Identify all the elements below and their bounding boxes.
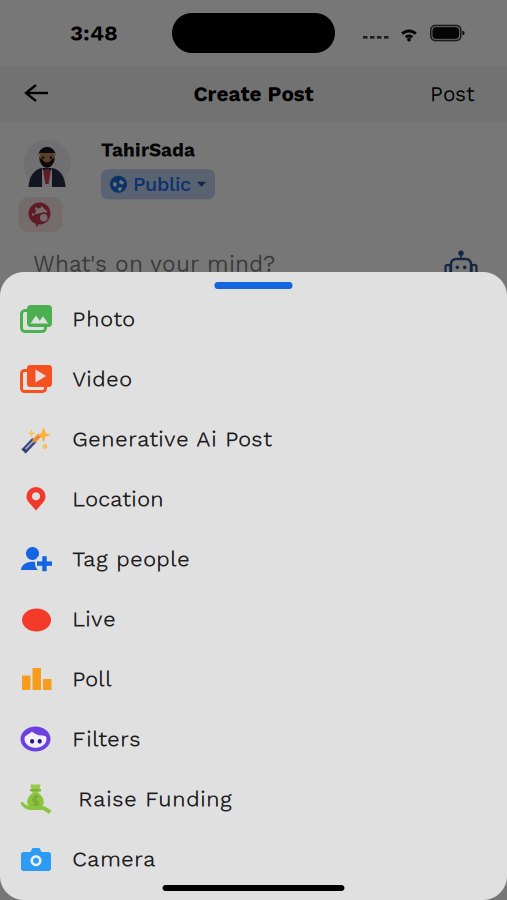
- button[interactable]: Public: [101, 169, 215, 199]
- staticText: Post: [430, 82, 475, 106]
- staticText: Create Post: [193, 82, 313, 106]
- staticText: TahirSada: [101, 139, 195, 161]
- button[interactable]: Live: [0, 589, 507, 649]
- button[interactable]: Filters: [0, 709, 507, 769]
- button[interactable]: Back: [10, 68, 66, 120]
- staticText: Poll: [72, 666, 112, 692]
- staticText: Location: [72, 486, 164, 512]
- staticText: 3:48: [70, 20, 118, 46]
- button[interactable]: Generative Ai Post: [0, 409, 507, 469]
- staticText: Video: [72, 366, 132, 392]
- staticText: Public: [133, 173, 191, 196]
- button[interactable]: AI assistant: [443, 248, 507, 280]
- staticText: Live: [72, 606, 116, 632]
- button[interactable]: Post: [416, 68, 489, 120]
- staticText: Raise Funding: [78, 786, 232, 812]
- button[interactable]: Raise Funding: [0, 769, 507, 829]
- staticText: What's on your mind?: [33, 251, 275, 277]
- button[interactable]: Location: [0, 469, 507, 529]
- staticText: Generative Ai Post: [72, 426, 272, 452]
- button[interactable]: Tag people: [0, 529, 507, 589]
- staticText: Photo: [72, 306, 135, 332]
- button[interactable]: Video: [0, 349, 507, 409]
- button[interactable]: Photo: [0, 289, 507, 349]
- button[interactable]: Camera: [0, 829, 507, 889]
- staticText: Tag people: [72, 546, 190, 572]
- button[interactable]: Poll: [0, 649, 507, 709]
- button[interactable]: Background colour: [18, 197, 62, 232]
- staticText: Camera: [72, 846, 156, 872]
- staticText: Filters: [72, 726, 141, 752]
